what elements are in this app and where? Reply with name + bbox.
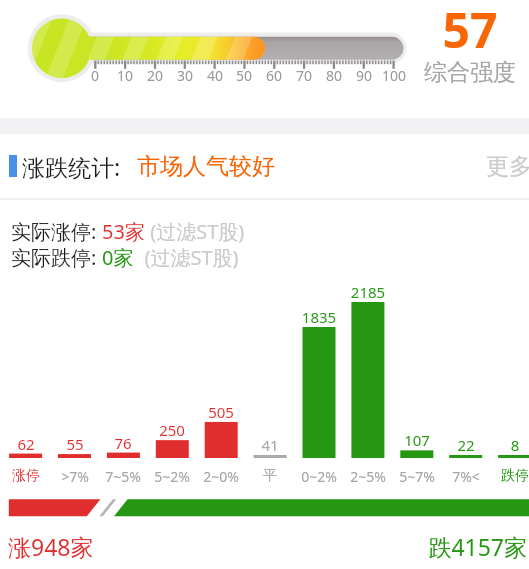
staticText: 涨跌统计: — [22, 151, 121, 182]
staticText: 30 — [160, 66, 210, 85]
staticText: 综合强度 — [423, 58, 517, 87]
staticText: 41 — [240, 435, 300, 455]
staticText: 90 — [339, 66, 389, 85]
button[interactable]: 涨跌统计: — [0, 150, 529, 182]
staticText: 8 — [485, 435, 529, 455]
staticText: 76 — [93, 433, 153, 453]
staticText: 57 — [423, 0, 517, 62]
staticText: 更多 — [486, 152, 529, 181]
staticText: 62 — [0, 434, 56, 454]
staticText: 250 — [142, 420, 202, 440]
button[interactable]: 更多 — [486, 150, 529, 182]
staticText: 2185 — [338, 282, 398, 302]
staticText: 20 — [130, 66, 180, 85]
staticText: 0 — [70, 66, 120, 85]
staticText: 7%< — [436, 467, 496, 486]
staticText: 50 — [219, 66, 269, 85]
staticText: 22 — [436, 435, 496, 455]
staticText: 5~7% — [387, 467, 447, 486]
staticText: (过滤ST股) — [145, 218, 245, 245]
staticText: 40 — [190, 66, 240, 85]
staticText: (过滤ST股) — [134, 244, 239, 271]
staticText: 7~5% — [93, 467, 153, 486]
staticText: 平 — [240, 467, 300, 485]
staticText: 0家 — [102, 244, 134, 271]
staticText: 100 — [369, 66, 419, 85]
staticText: 跌停 — [485, 467, 529, 485]
staticText: 实际涨停: — [11, 218, 102, 245]
staticText: 107 — [387, 430, 447, 450]
staticText: 505 — [191, 402, 251, 422]
staticText: 60 — [249, 66, 299, 85]
staticText: 跌4157家 — [380, 531, 527, 562]
staticText: 80 — [309, 66, 359, 85]
staticText: 55 — [45, 434, 105, 454]
staticText: 0~2% — [289, 467, 349, 486]
staticText: 70 — [279, 66, 329, 85]
staticText: 市场人气较好 — [137, 152, 275, 181]
staticText: 2~0% — [191, 467, 251, 486]
staticText: 5~2% — [142, 467, 202, 486]
staticText: 53家 — [102, 218, 145, 245]
staticText: 1835 — [289, 307, 349, 327]
staticText: 实际跌停: — [11, 244, 102, 271]
staticText: 涨停 — [0, 467, 56, 485]
staticText: 2~5% — [338, 467, 398, 486]
staticText: 涨948家 — [8, 531, 94, 562]
staticText: 10 — [100, 66, 150, 85]
staticText: >7% — [45, 467, 105, 486]
